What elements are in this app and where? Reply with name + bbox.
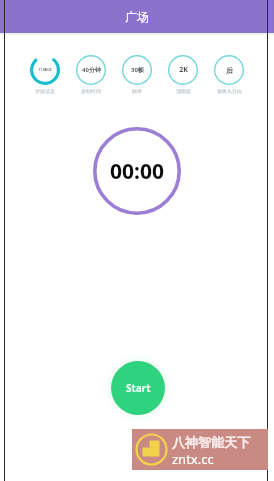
staticText: Start (126, 381, 151, 395)
staticText: 摄像头方向 (217, 88, 242, 94)
staticText: 40分钟 (82, 66, 101, 74)
button[interactable]: 广场 (0, 0, 274, 33)
staticText: 存储信息 (35, 88, 55, 94)
staticText: 后 (226, 66, 233, 75)
staticText: 帧率 (132, 88, 142, 94)
staticText: 00:00 (110, 157, 164, 186)
staticText: 广场 (125, 9, 149, 24)
staticText: 30帧 (131, 66, 144, 74)
button[interactable]: 后 (206, 55, 252, 94)
button[interactable]: Start (104, 354, 172, 422)
button[interactable]: 00:00 (93, 127, 181, 215)
other: Watermark logo (135, 433, 168, 466)
button[interactable]: 40分钟 (68, 55, 114, 94)
staticText: zntx.cc (172, 450, 214, 468)
button[interactable]: 30帧 (114, 55, 160, 94)
button[interactable]: 2K (160, 55, 206, 94)
staticText: 八神智能天下 (172, 434, 250, 450)
staticText: 11 GB/32 (38, 68, 52, 72)
staticText: 2K (179, 65, 188, 75)
staticText: 清晰度 (176, 88, 191, 94)
button[interactable]: 11 GB/32 (22, 55, 68, 94)
staticText: 录制时间 (81, 88, 101, 94)
